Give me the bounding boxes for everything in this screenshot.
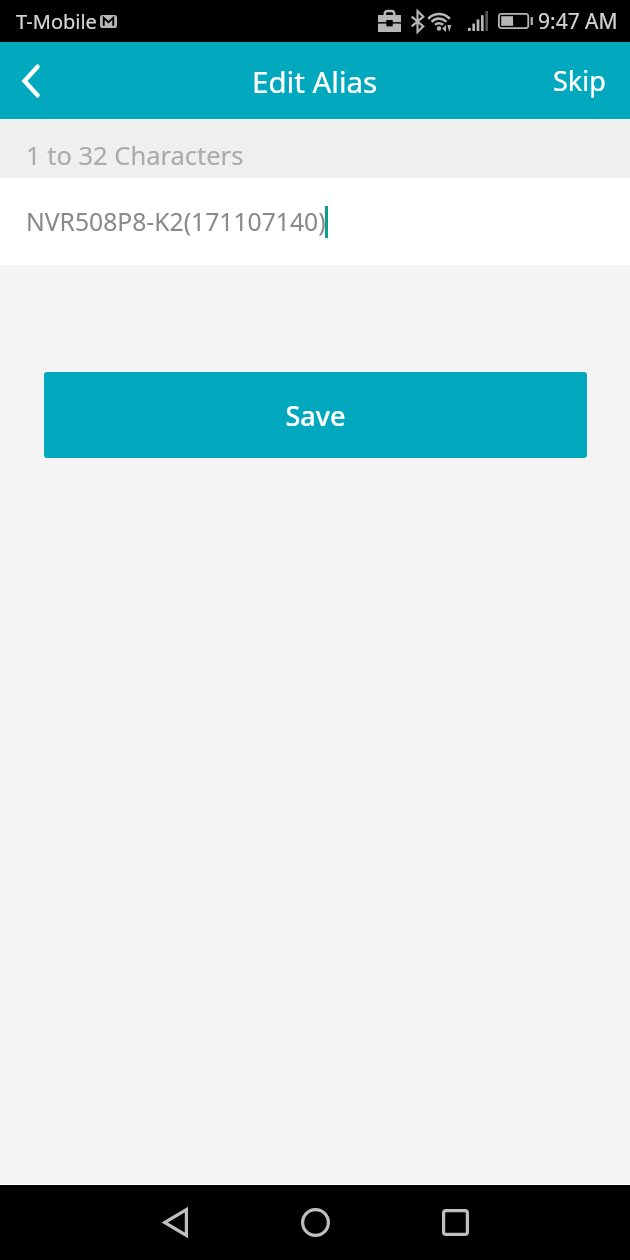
staticText: 9:47 AM [538,7,618,36]
button[interactable]: Skip [527,42,630,119]
staticText: Edit Alias [252,61,378,101]
staticText: Save [285,397,346,434]
button[interactable]: Save [44,372,587,458]
staticText: NVR508P8-K2(171107140) [26,205,326,239]
staticText: Skip [553,62,606,99]
button[interactable]: Back [135,1185,215,1260]
staticText: 1 to 32 Characters [26,138,244,173]
button[interactable]: Back [0,42,63,119]
button[interactable]: NVR508P8-K2(171107140) [0,178,630,265]
button[interactable]: Home [275,1185,355,1260]
staticText: T-Mobile [16,8,97,35]
button[interactable]: Recent apps [415,1185,495,1260]
